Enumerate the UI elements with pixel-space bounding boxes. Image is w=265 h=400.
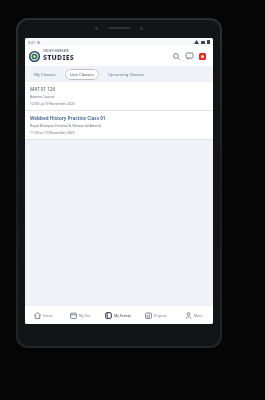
button[interactable]: My Fee	[62, 306, 99, 324]
staticText: VISHVESHWARAYA	[43, 49, 69, 53]
button[interactable]: Webbed History Practice Class 01	[25, 111, 213, 139]
staticText: 12:00 up 19 November 2023	[30, 101, 75, 106]
staticText: Upcoming Classes	[108, 72, 144, 78]
staticText: Adams Course	[30, 94, 55, 99]
button[interactable]: Upcoming Classes	[103, 69, 149, 80]
staticText: Projects	[154, 313, 167, 318]
button[interactable]: Search	[170, 50, 183, 63]
staticText: 9:41	[28, 40, 35, 45]
staticText: STUDIES	[43, 53, 74, 63]
staticText: My Fee	[79, 313, 91, 318]
button[interactable]: Home	[25, 306, 62, 324]
button[interactable]: MAT 01 126	[25, 82, 213, 110]
staticText: Royal Banquet Festival & Memorial Attend	[30, 123, 101, 128]
staticText: MAT 01 126	[30, 86, 56, 92]
button[interactable]: More	[175, 306, 213, 324]
staticText: Home	[43, 313, 53, 318]
staticText: 11:30 on 19 November 2023	[30, 130, 75, 135]
button[interactable]: Live Classes	[65, 69, 99, 80]
staticText: My Classes	[34, 72, 56, 78]
staticText: Webbed History Practice Class 01	[30, 115, 106, 121]
button[interactable]: My Classes	[29, 69, 61, 80]
staticText: Live Classes	[70, 72, 94, 78]
staticText: My Events	[114, 313, 131, 318]
button[interactable]: My Events	[99, 306, 137, 324]
button[interactable]: Notifications	[196, 50, 209, 63]
button[interactable]: Projects	[137, 306, 175, 324]
button[interactable]: Messages	[183, 50, 196, 63]
staticText: More	[194, 313, 203, 318]
